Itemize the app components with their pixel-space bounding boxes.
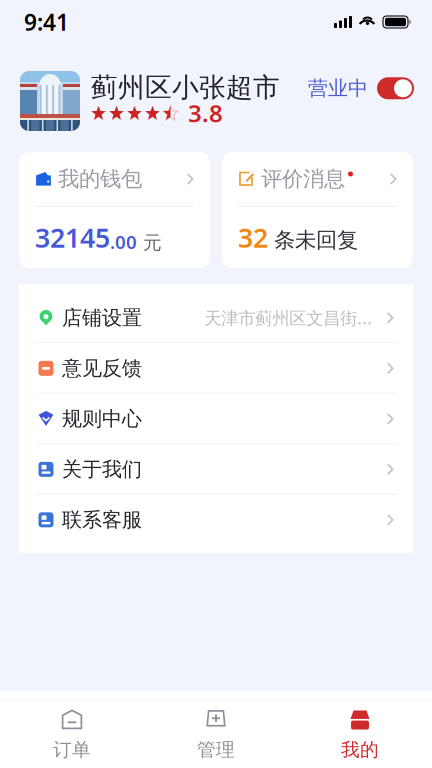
- button[interactable]: 订单: [0, 700, 144, 760]
- button[interactable]: 规则中心: [19, 394, 413, 444]
- button[interactable]: 营业中: [308, 76, 414, 101]
- button[interactable]: 意见反馈: [19, 343, 413, 394]
- button[interactable]: 管理: [144, 700, 288, 760]
- staticText: 评价消息: [261, 166, 345, 192]
- staticText: 营业中: [308, 76, 368, 101]
- button[interactable]: 联系客服: [19, 495, 413, 545]
- staticText: 意见反馈: [62, 356, 142, 381]
- staticText: 关于我们: [62, 457, 142, 482]
- staticText: 订单: [53, 738, 91, 761]
- button[interactable]: 评价消息: [222, 152, 413, 268]
- staticText: 我的: [341, 738, 379, 761]
- staticText: 天津市蓟州区文昌街...: [204, 306, 372, 329]
- button[interactable]: 关于我们: [19, 444, 413, 495]
- staticText: 元: [137, 231, 162, 254]
- staticText: 店铺设置: [62, 306, 142, 330]
- button[interactable]: 我的钱包: [19, 152, 210, 268]
- staticText: 9:41: [24, 7, 69, 37]
- staticText: 3.8: [188, 97, 223, 129]
- staticText: .00: [110, 229, 137, 254]
- staticText: 管理: [197, 738, 235, 761]
- staticText: 蓟州区小张超市: [91, 71, 280, 104]
- staticText: 条未回复: [268, 227, 358, 253]
- staticText: 32: [238, 220, 268, 255]
- staticText: 32145: [35, 220, 110, 255]
- button[interactable]: 店铺设置: [19, 293, 413, 343]
- staticText: 规则中心: [62, 407, 142, 431]
- button[interactable]: 我的: [288, 700, 432, 760]
- staticText: 我的钱包: [58, 166, 142, 192]
- staticText: 联系客服: [62, 508, 142, 532]
